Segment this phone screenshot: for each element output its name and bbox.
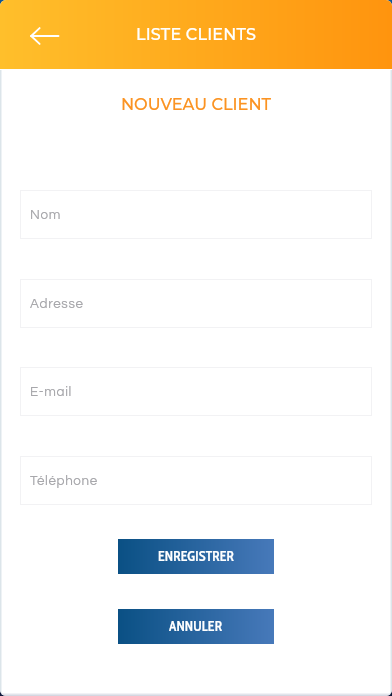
staticText: NOUVEAU CLIENT bbox=[0, 94, 392, 114]
button[interactable]: ANNULER bbox=[118, 609, 274, 644]
staticText: ENREGISTRER bbox=[158, 548, 235, 565]
staticText: Téléphone bbox=[30, 474, 98, 488]
staticText: Adresse bbox=[30, 297, 84, 311]
staticText: ANNULER bbox=[169, 618, 223, 635]
button[interactable]: Adresse bbox=[20, 279, 372, 328]
button[interactable]: E-mail bbox=[20, 367, 372, 416]
staticText: LISTE CLIENTS bbox=[136, 25, 257, 45]
button[interactable]: ENREGISTRER bbox=[118, 539, 274, 574]
button[interactable]: Nom bbox=[20, 190, 372, 239]
button[interactable]: Téléphone bbox=[20, 456, 372, 505]
staticText: E-mail bbox=[30, 385, 72, 399]
staticText: Nom bbox=[30, 208, 61, 222]
button[interactable]: Back bbox=[20, 11, 70, 61]
